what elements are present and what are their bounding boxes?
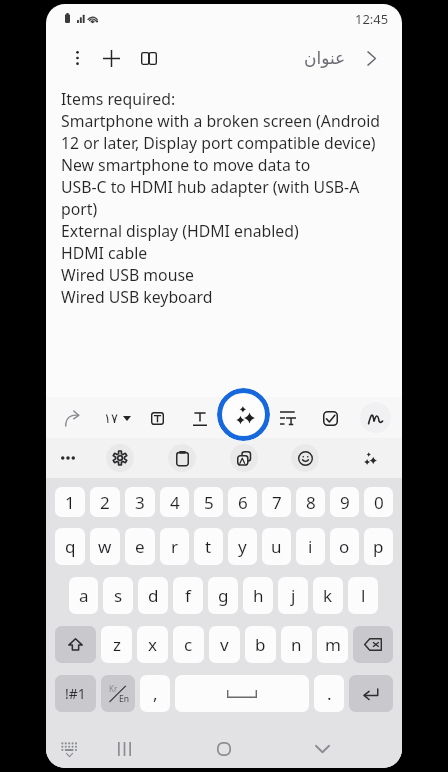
button[interactable]: c bbox=[173, 626, 204, 663]
button[interactable]: Paragraph align bbox=[271, 401, 305, 435]
staticText: ١٧ bbox=[104, 411, 118, 426]
staticText: z bbox=[113, 633, 121, 656]
staticText: h bbox=[253, 584, 264, 607]
staticText: p bbox=[373, 535, 384, 558]
staticText: 12:45 bbox=[355, 10, 389, 28]
button[interactable]: Clipboard bbox=[168, 444, 196, 472]
button[interactable]: a bbox=[69, 577, 98, 614]
button[interactable]: s bbox=[103, 577, 133, 614]
button[interactable]: 1 bbox=[55, 487, 85, 517]
staticText: 1 bbox=[65, 491, 75, 514]
button[interactable]: x bbox=[137, 626, 168, 663]
button[interactable]: Handwriting bbox=[360, 402, 391, 433]
button[interactable]: Home bbox=[205, 730, 243, 768]
staticText: x bbox=[148, 633, 157, 656]
button[interactable]: , bbox=[140, 675, 170, 712]
button[interactable]: Text style bbox=[140, 401, 174, 435]
button[interactable]: r bbox=[160, 528, 189, 565]
button[interactable]: f bbox=[173, 577, 203, 614]
button[interactable]: Shift bbox=[55, 626, 96, 663]
button[interactable]: p bbox=[364, 528, 393, 565]
button[interactable]: u bbox=[262, 528, 291, 565]
staticText: u bbox=[271, 535, 282, 558]
staticText: USB-C to HDMI hub adapter (with USB-A bbox=[61, 176, 360, 198]
button[interactable]: n bbox=[281, 626, 312, 663]
button[interactable]: Enter bbox=[349, 675, 393, 712]
staticText: j bbox=[291, 584, 296, 607]
button[interactable]: Recent apps bbox=[105, 730, 143, 768]
staticText: En bbox=[119, 693, 129, 705]
button[interactable]: 2 bbox=[90, 487, 120, 517]
staticText: 12 or later, Display port compatible dev… bbox=[61, 132, 376, 154]
staticText: w bbox=[98, 535, 112, 558]
button[interactable]: Redo bbox=[55, 401, 89, 435]
button[interactable]: Change language bbox=[101, 675, 135, 712]
button[interactable]: j bbox=[278, 577, 308, 614]
staticText: c bbox=[184, 633, 193, 656]
staticText: 3 bbox=[135, 491, 145, 514]
button[interactable]: Emoji bbox=[291, 444, 319, 472]
button[interactable]: h bbox=[243, 577, 273, 614]
button[interactable]: 7 bbox=[262, 487, 291, 517]
button[interactable]: Backspace bbox=[353, 626, 393, 663]
staticText: 5 bbox=[204, 491, 214, 514]
staticText: d bbox=[148, 584, 159, 607]
button[interactable]: Checklist bbox=[313, 401, 347, 435]
button[interactable] bbox=[175, 675, 309, 712]
button[interactable]: AI assist bbox=[217, 388, 270, 441]
button[interactable]: q bbox=[55, 528, 85, 565]
staticText: a bbox=[79, 584, 89, 607]
button[interactable]: Keyboard settings bbox=[106, 444, 134, 472]
button[interactable]: t bbox=[194, 528, 223, 565]
button[interactable]: 4 bbox=[160, 487, 189, 517]
button[interactable]: Hide keyboard bbox=[50, 730, 88, 768]
staticText: y bbox=[238, 535, 247, 558]
staticText: !#1 bbox=[65, 684, 86, 703]
staticText: 4 bbox=[170, 491, 180, 514]
button[interactable]: 5 bbox=[194, 487, 223, 517]
button[interactable]: k bbox=[313, 577, 343, 614]
button[interactable]: . bbox=[314, 675, 344, 712]
button[interactable]: v bbox=[209, 626, 240, 663]
button[interactable]: Translate bbox=[230, 444, 258, 472]
button[interactable]: g bbox=[208, 577, 238, 614]
button[interactable]: More keyboard options bbox=[54, 444, 82, 472]
button[interactable]: !#1 bbox=[55, 675, 96, 712]
staticText: Items required: bbox=[61, 88, 176, 110]
staticText: 7 bbox=[272, 491, 282, 514]
button[interactable]: Next bbox=[356, 43, 387, 74]
staticText: 2 bbox=[100, 491, 110, 514]
button[interactable]: d bbox=[138, 577, 168, 614]
staticText: Wired USB mouse bbox=[61, 264, 194, 286]
button[interactable]: o bbox=[330, 528, 359, 565]
button[interactable]: 9 bbox=[330, 487, 359, 517]
button[interactable]: More options bbox=[60, 41, 94, 75]
staticText: عنوان bbox=[304, 48, 346, 68]
button[interactable]: i bbox=[296, 528, 325, 565]
button[interactable]: Reading mode bbox=[132, 41, 166, 75]
button[interactable]: Add bbox=[94, 41, 128, 75]
staticText: New smartphone to move data to bbox=[61, 154, 311, 176]
button[interactable]: m bbox=[317, 626, 348, 663]
button[interactable]: 3 bbox=[125, 487, 155, 517]
button[interactable]: 6 bbox=[228, 487, 257, 517]
button[interactable]: z bbox=[101, 626, 132, 663]
staticText: m bbox=[325, 633, 341, 656]
button[interactable]: ١٧ bbox=[96, 401, 138, 435]
button[interactable]: 8 bbox=[296, 487, 325, 517]
staticText: port) bbox=[61, 198, 98, 220]
button[interactable]: y bbox=[228, 528, 257, 565]
button[interactable]: Back bbox=[303, 730, 341, 768]
button[interactable]: w bbox=[90, 528, 120, 565]
staticText: q bbox=[65, 535, 76, 558]
staticText: 6 bbox=[238, 491, 248, 514]
button[interactable]: Underline bbox=[183, 401, 217, 435]
button[interactable]: AI suggestions bbox=[355, 444, 383, 472]
button[interactable]: b bbox=[245, 626, 276, 663]
button[interactable]: l bbox=[348, 577, 378, 614]
staticText: l bbox=[361, 584, 366, 607]
staticText: , bbox=[153, 682, 158, 705]
button[interactable]: 0 bbox=[364, 487, 393, 517]
button[interactable]: e bbox=[125, 528, 155, 565]
staticText: t bbox=[205, 535, 212, 558]
